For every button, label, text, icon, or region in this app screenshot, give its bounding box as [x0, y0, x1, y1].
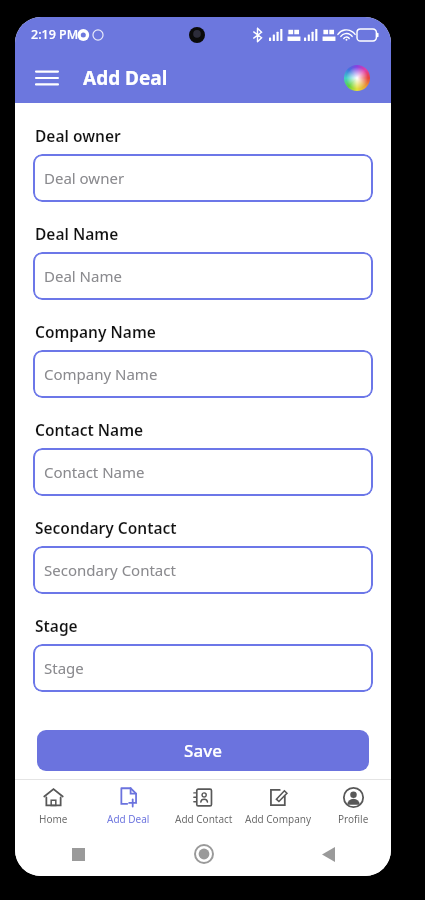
- button[interactable]: Save: [37, 730, 369, 771]
- staticText: Secondary Contact: [35, 517, 177, 538]
- staticText: Company Name: [44, 364, 158, 384]
- staticText: Deal owner: [44, 168, 125, 188]
- staticText: Deal Name: [35, 223, 119, 244]
- button[interactable]: Deal Name: [33, 252, 373, 300]
- staticText: Save: [184, 739, 222, 762]
- button[interactable]: Company Name: [33, 350, 373, 398]
- button[interactable]: Recent apps: [15, 832, 141, 876]
- button[interactable]: Add Deal: [91, 780, 166, 832]
- button[interactable]: Secondary Contact: [33, 546, 373, 594]
- staticText: Add Contact: [175, 812, 233, 826]
- staticText: Stage: [44, 658, 84, 678]
- staticText: Secondary Contact: [44, 560, 176, 580]
- button[interactable]: Stage: [33, 644, 373, 692]
- staticText: Home: [39, 812, 68, 826]
- staticText: Add Deal: [83, 65, 168, 91]
- button[interactable]: Add Company: [241, 780, 316, 832]
- staticText: Stage: [35, 615, 78, 636]
- button[interactable]: Open navigation menu: [25, 56, 69, 100]
- staticText: Deal owner: [35, 125, 121, 146]
- staticText: Profile: [338, 812, 369, 826]
- button[interactable]: Back: [266, 832, 391, 876]
- button[interactable]: Deal owner: [33, 154, 373, 202]
- button[interactable]: Home: [141, 832, 266, 876]
- staticText: Contact Name: [44, 462, 145, 482]
- button[interactable]: Profile: [316, 780, 391, 832]
- button[interactable]: Add Contact: [166, 780, 241, 832]
- staticText: Add Deal: [107, 812, 150, 826]
- staticText: Add Company: [245, 812, 312, 826]
- staticText: Company Name: [35, 321, 156, 342]
- staticText: Contact Name: [35, 419, 144, 440]
- button[interactable]: Home: [15, 780, 91, 832]
- button[interactable]: Profile avatar: [337, 58, 377, 98]
- staticText: Deal Name: [44, 266, 122, 286]
- staticText: 2:19 PM: [31, 26, 79, 43]
- button[interactable]: Contact Name: [33, 448, 373, 496]
